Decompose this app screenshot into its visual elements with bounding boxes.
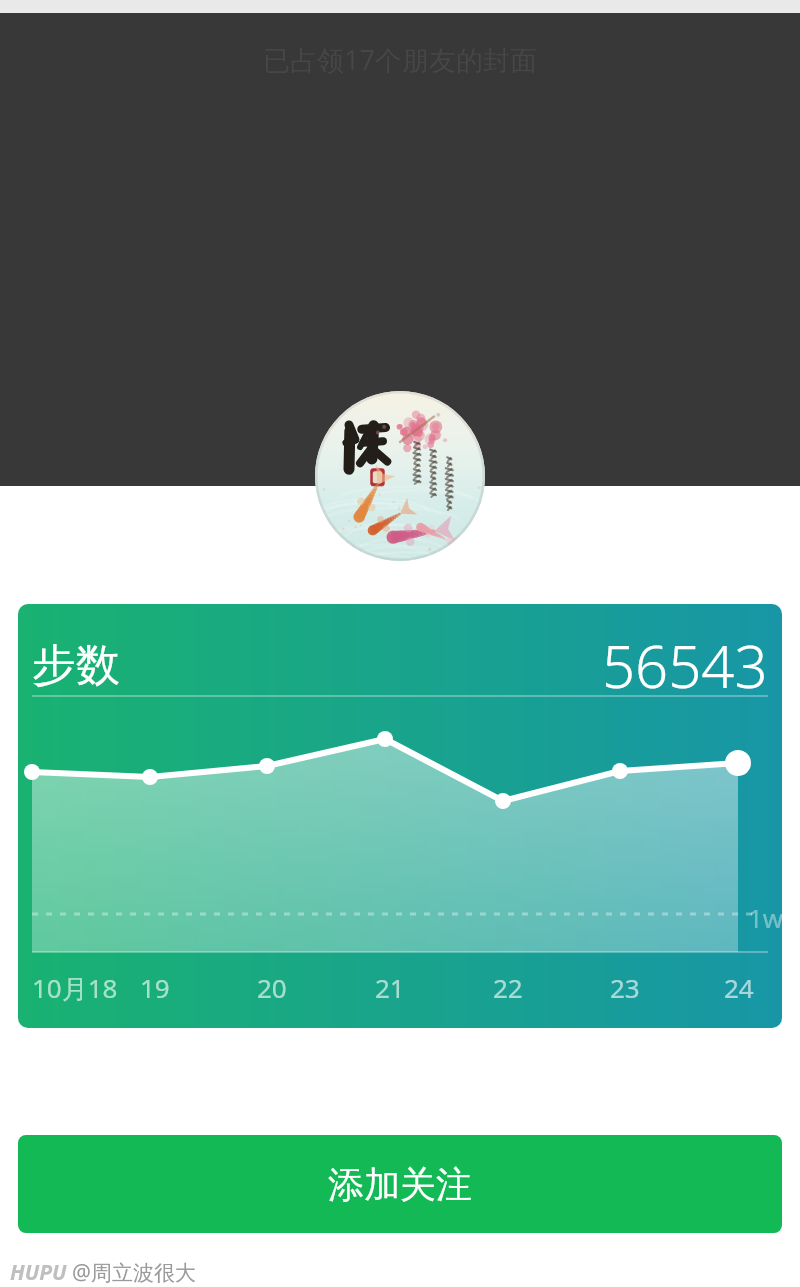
staticText: 1w xyxy=(748,900,782,935)
staticText: 21 xyxy=(375,970,405,1005)
staticText: 10月18 xyxy=(32,970,118,1006)
staticText: 20 xyxy=(257,970,287,1005)
button[interactable]: 已占领17个朋友的封面 xyxy=(263,41,537,78)
staticText: 23 xyxy=(610,970,640,1005)
staticText: 56543 xyxy=(602,626,768,705)
staticText: 19 xyxy=(140,970,170,1005)
staticText: 24 xyxy=(724,970,754,1005)
button[interactable]: Profile avatar xyxy=(315,391,485,561)
staticText: 已占领17个朋友的封面 xyxy=(263,41,537,78)
button[interactable]: 步数 xyxy=(18,604,782,1028)
staticText: 步数 xyxy=(32,638,120,693)
button[interactable]: 添加关注 xyxy=(18,1135,782,1233)
staticText: 添加关注 xyxy=(328,1162,472,1207)
staticText: HUPU xyxy=(10,1258,67,1287)
staticText: @周立波很大 xyxy=(72,1258,196,1287)
staticText: 22 xyxy=(493,970,523,1005)
